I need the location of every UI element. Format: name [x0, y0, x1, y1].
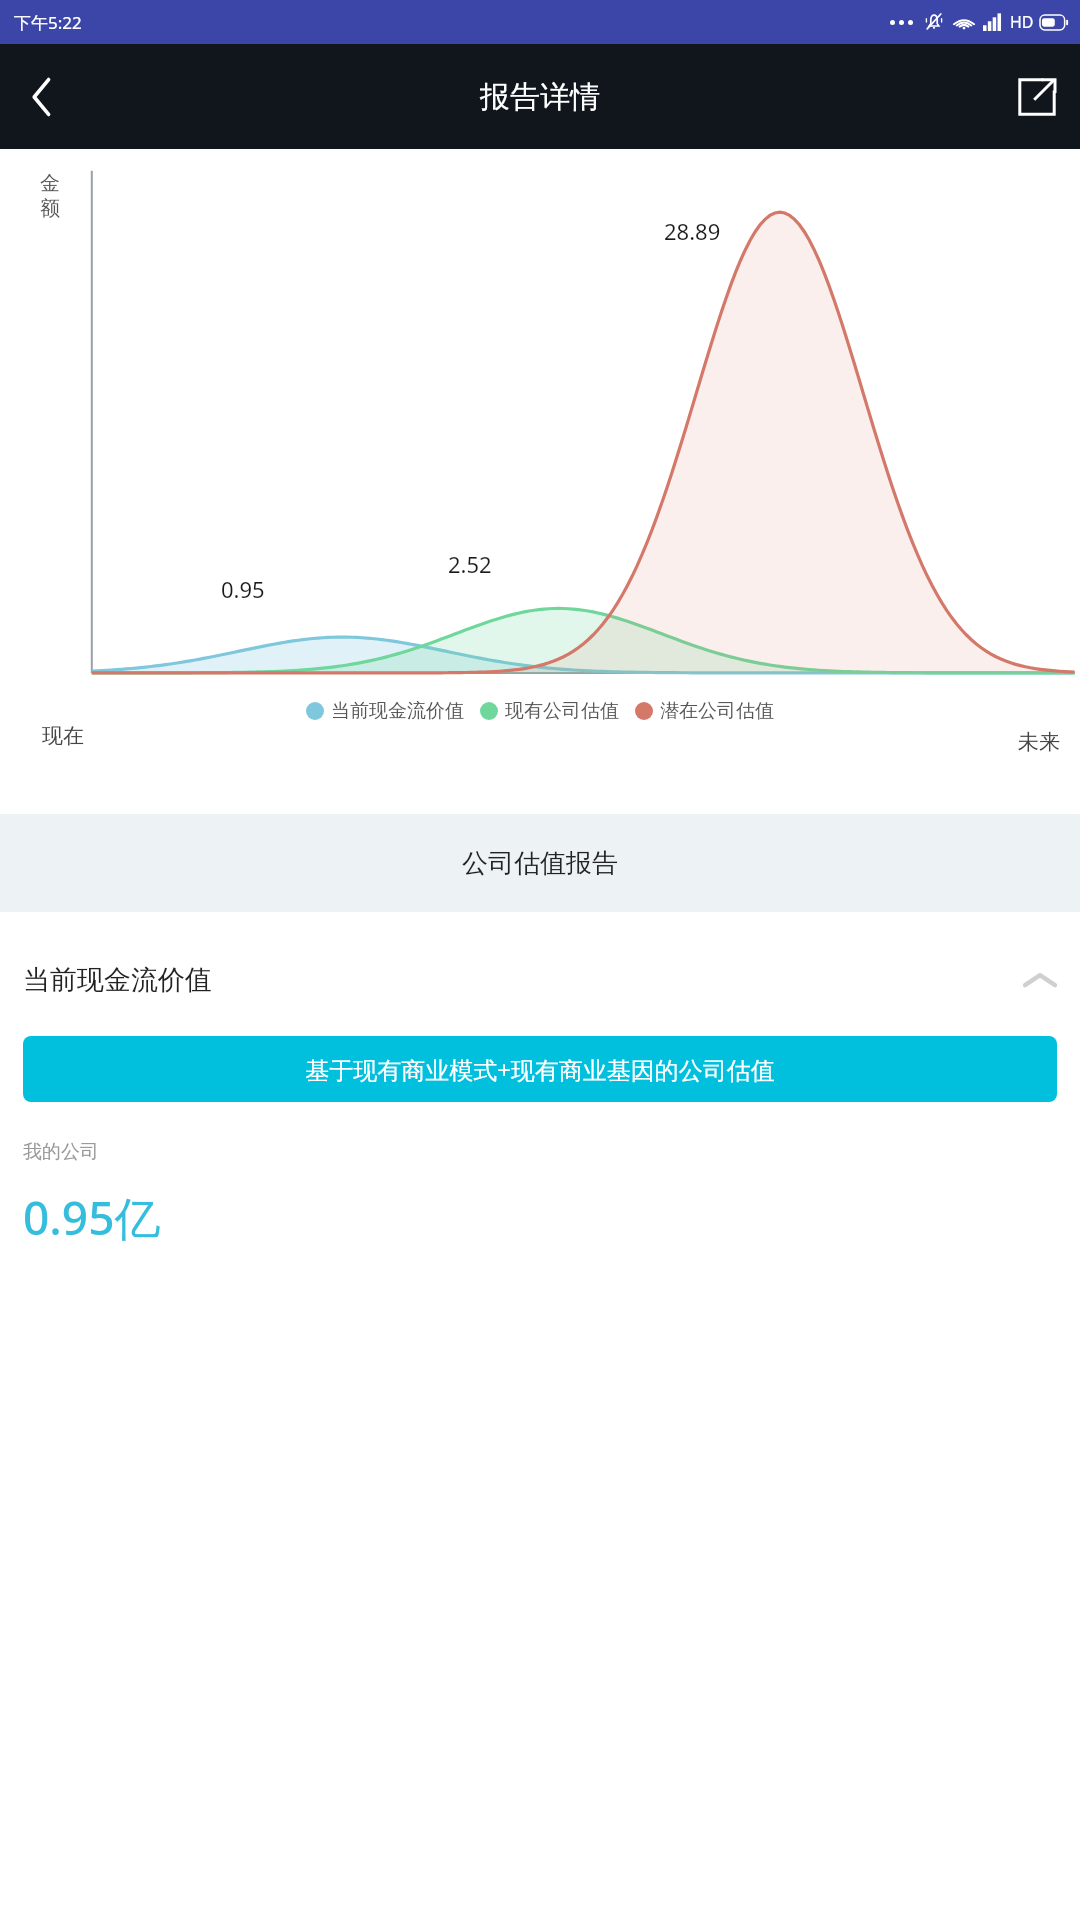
staticText: 潜在公司估值 [660, 699, 774, 723]
staticText: 现在 [42, 723, 84, 749]
staticText: 28.89 [664, 216, 721, 246]
staticText: 0.95 [221, 574, 265, 604]
staticText: 当前现金流价值 [23, 963, 212, 997]
staticText: 0.95亿 [23, 1186, 161, 1249]
staticText: 未来 [1018, 729, 1060, 755]
staticText: 2.52 [448, 549, 492, 579]
button[interactable]: 基于现有商业模式+现有商业基因的公司估值 [23, 1036, 1057, 1102]
button[interactable]: Back [0, 55, 84, 139]
staticText: 当前现金流价值 [331, 699, 464, 723]
button[interactable]: Share [994, 54, 1080, 140]
staticText: 金 [40, 171, 60, 196]
staticText: 基于现有商业模式+现有商业基因的公司估值 [305, 1053, 775, 1086]
staticText: HD [1010, 11, 1034, 33]
staticText: 下午5:22 [14, 11, 82, 34]
staticText: 我的公司 [23, 1140, 99, 1164]
button[interactable]: 当前现金流价值 [0, 950, 1080, 1010]
staticText: 报告详情 [480, 78, 600, 116]
staticText: 现有公司估值 [505, 699, 619, 723]
staticText: 额 [40, 196, 60, 221]
staticText: 公司估值报告 [462, 847, 618, 880]
